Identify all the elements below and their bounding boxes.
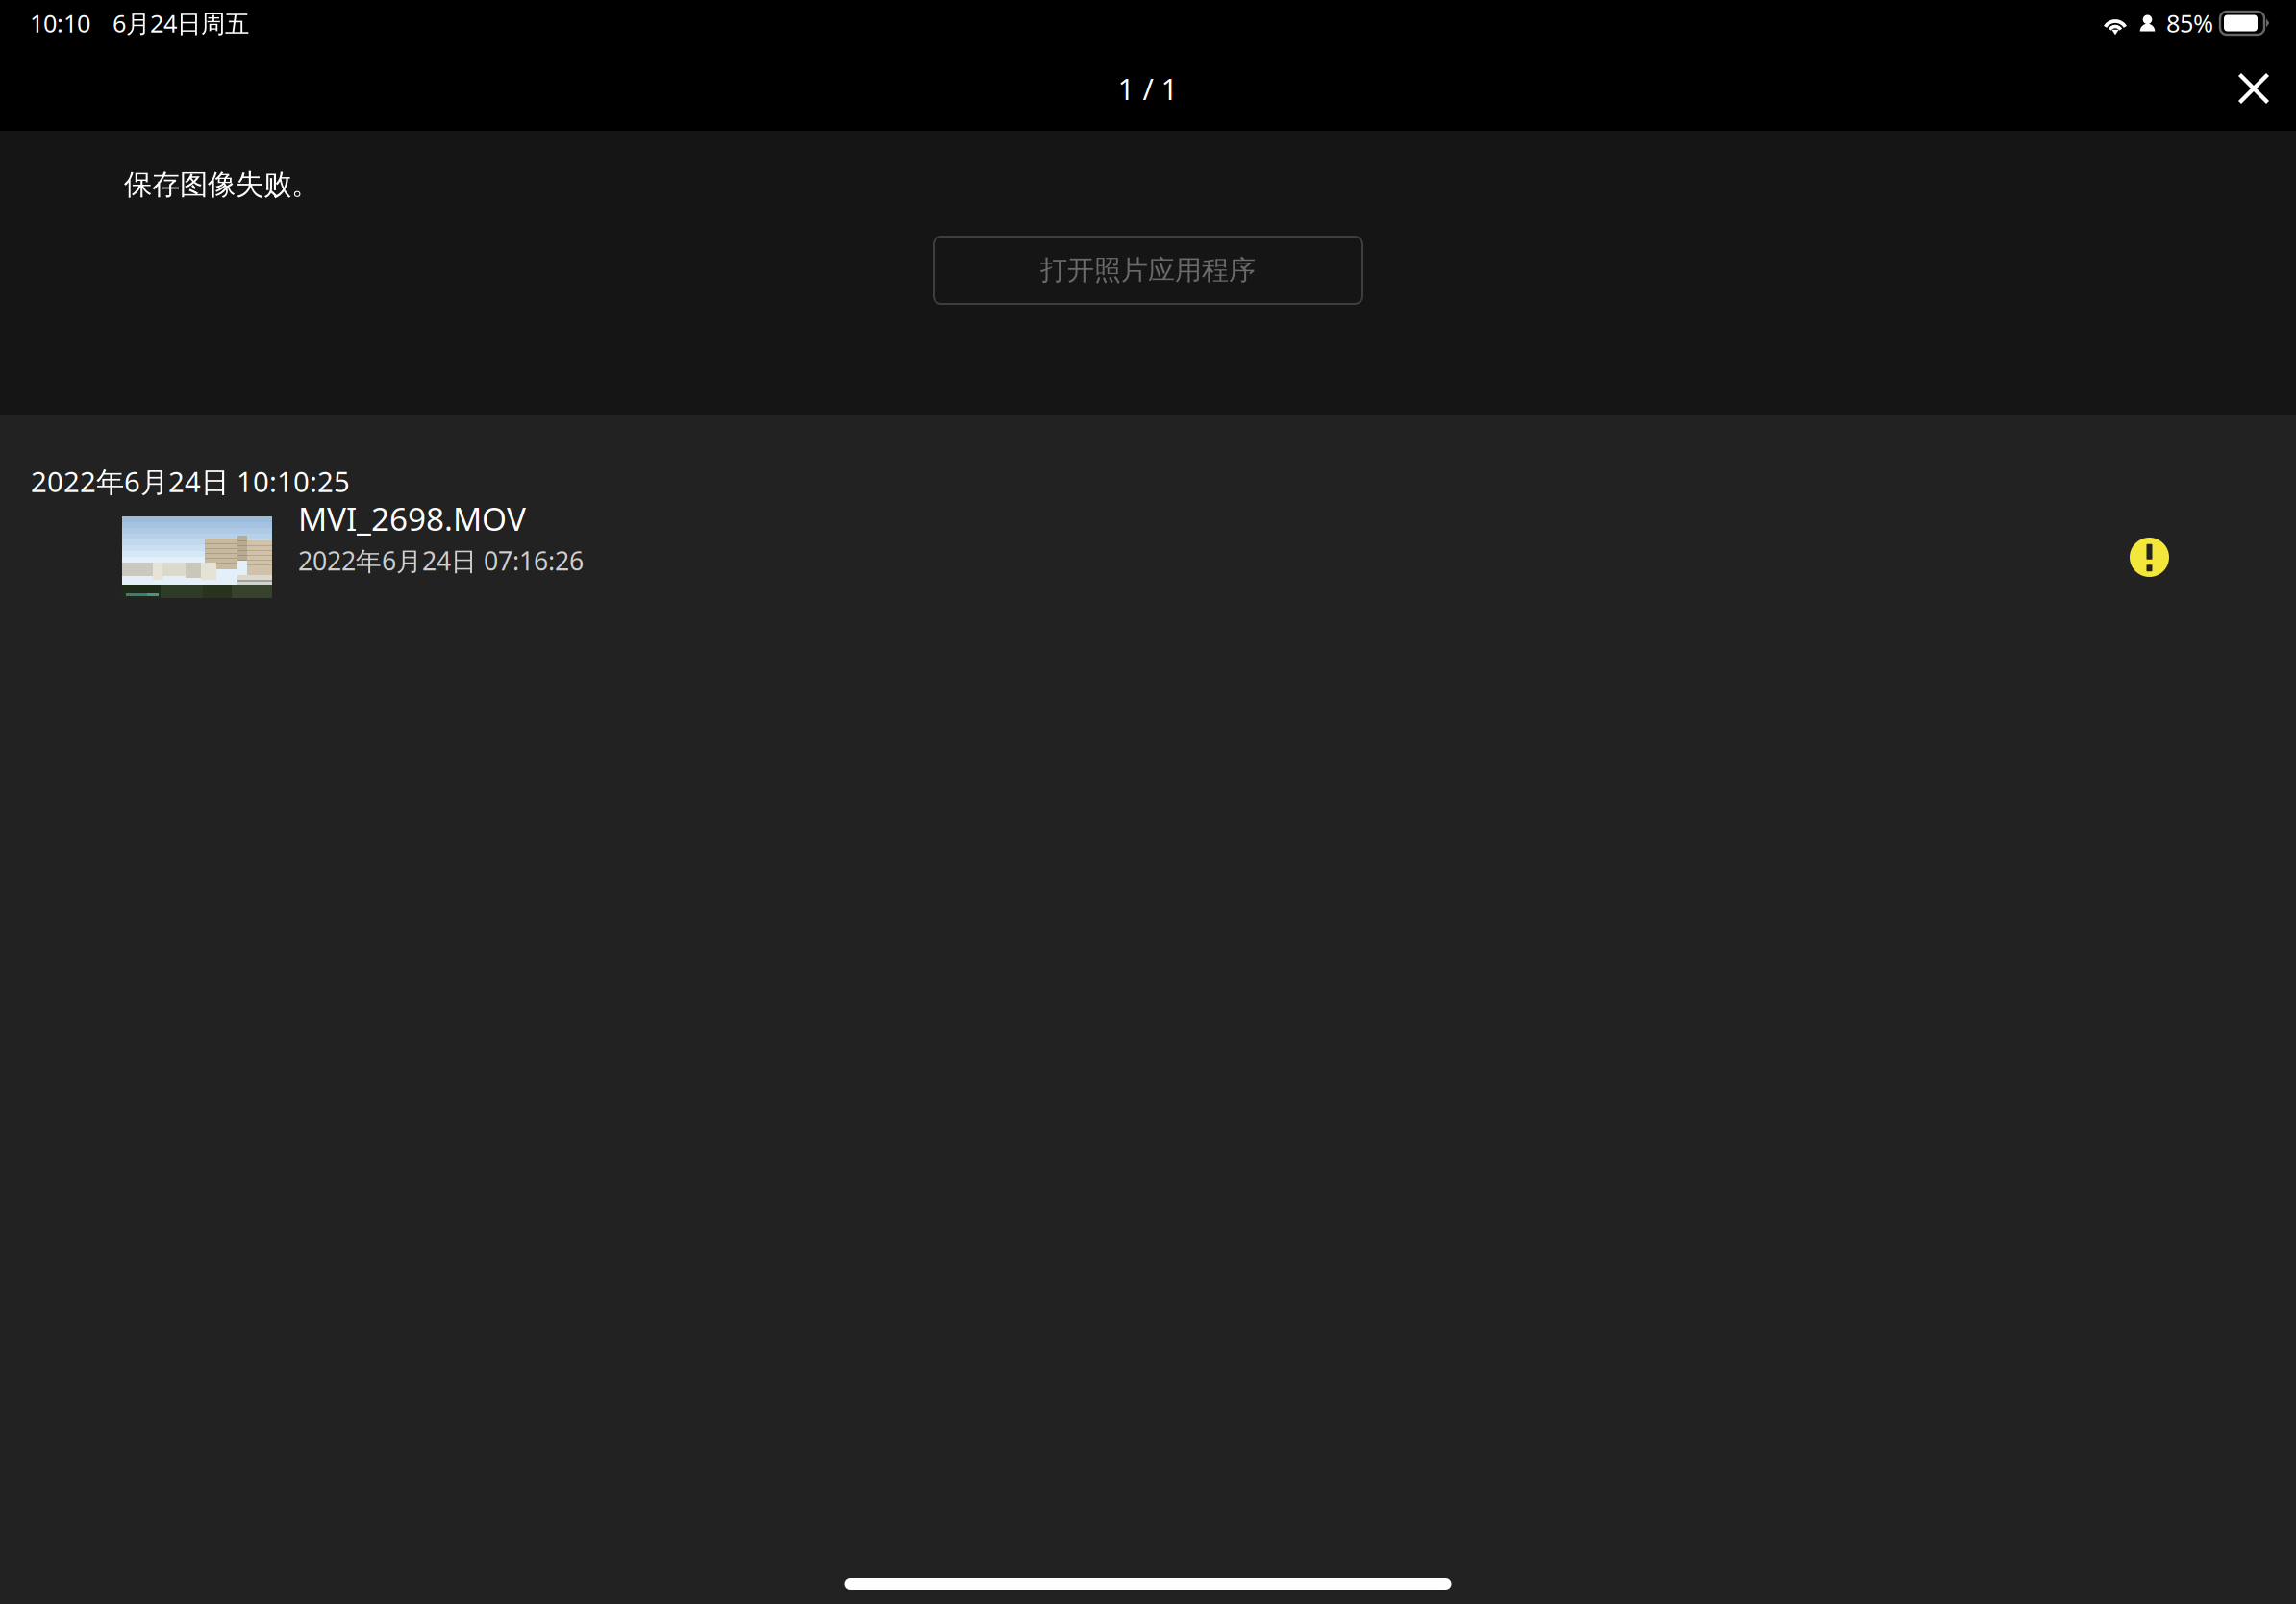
staticText: 2022年6月24日 10:10:25	[31, 463, 350, 500]
staticText: 保存图像失败。	[124, 167, 319, 202]
staticText: 6月24日周五	[112, 7, 249, 39]
staticText: 2022年6月24日 07:16:26	[298, 544, 584, 578]
button[interactable]: Close	[2211, 46, 2296, 131]
staticText: 1 / 1	[1118, 69, 1178, 108]
staticText: 打开照片应用程序	[1040, 254, 1256, 287]
button[interactable]: 打开照片应用程序	[934, 237, 1362, 304]
staticText: 85%	[2166, 7, 2213, 39]
button[interactable]: MVI_2698.MOV	[0, 496, 2296, 617]
staticText: 10:10	[30, 7, 90, 39]
staticText: MVI_2698.MOV	[298, 497, 526, 540]
